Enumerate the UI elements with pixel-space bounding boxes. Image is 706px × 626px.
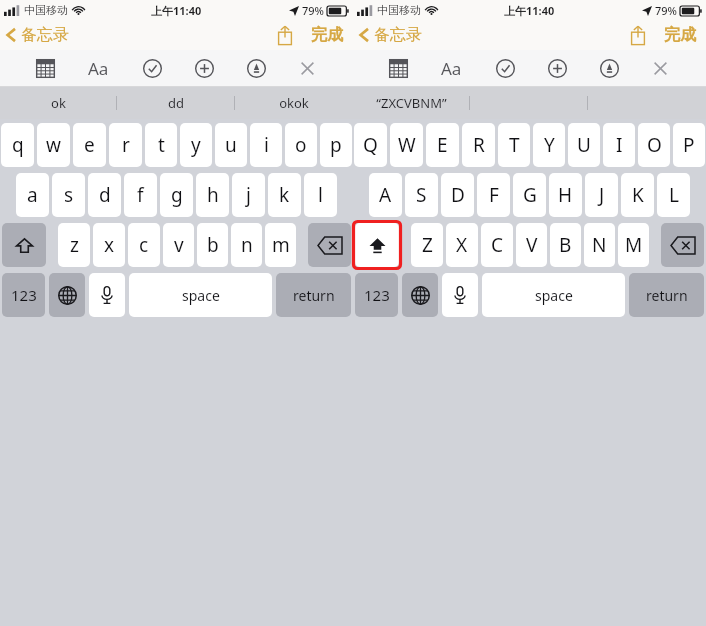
button[interactable]: C: [481, 223, 513, 267]
staticText: 上午11:40: [504, 3, 555, 18]
button[interactable]: ok: [0, 87, 117, 119]
button[interactable]: dd: [117, 87, 235, 119]
button[interactable]: return: [629, 273, 704, 317]
staticText: F: [489, 182, 499, 208]
button[interactable]: b: [197, 223, 228, 267]
button[interactable]: Z: [411, 223, 443, 267]
button[interactable]: “ZXCVBNM”: [353, 87, 470, 119]
button[interactable]: Add: [188, 54, 221, 83]
button[interactable]: j: [232, 173, 265, 217]
button[interactable]: U: [568, 123, 600, 167]
button[interactable]: G: [513, 173, 546, 217]
button[interactable]: Table: [29, 54, 62, 83]
staticText: 上午11:40: [151, 3, 202, 18]
button[interactable]: y: [180, 123, 212, 167]
button[interactable]: Shift: [355, 223, 399, 267]
button[interactable]: p: [320, 123, 352, 167]
button[interactable]: f: [124, 173, 157, 217]
button[interactable]: 123: [2, 273, 45, 317]
button[interactable]: Close: [291, 54, 324, 83]
button[interactable]: T: [498, 123, 530, 167]
button[interactable]: space: [482, 273, 625, 317]
button[interactable]: S: [405, 173, 438, 217]
staticText: z: [70, 232, 79, 258]
button[interactable]: z: [58, 223, 90, 267]
button[interactable]: Close: [644, 54, 677, 83]
button[interactable]: k: [268, 173, 301, 217]
button[interactable]: A: [369, 173, 402, 217]
button[interactable]: Checklist: [489, 54, 522, 83]
button[interactable]: i: [250, 123, 282, 167]
button[interactable]: Delete: [308, 223, 351, 267]
button[interactable]: v: [163, 223, 194, 267]
button[interactable]: Y: [533, 123, 565, 167]
button[interactable]: n: [231, 223, 262, 267]
staticText: p: [330, 132, 342, 158]
button[interactable]: I: [603, 123, 635, 167]
button[interactable]: N: [584, 223, 615, 267]
button[interactable]: d: [88, 173, 121, 217]
button[interactable]: J: [585, 173, 618, 217]
button[interactable]: Share: [271, 23, 299, 47]
button[interactable]: l: [304, 173, 337, 217]
button[interactable]: F: [477, 173, 510, 217]
button[interactable]: return: [276, 273, 351, 317]
button[interactable]: h: [196, 173, 229, 217]
button[interactable]: Add: [541, 54, 574, 83]
button[interactable]: a: [16, 173, 49, 217]
button[interactable]: Shift: [2, 223, 46, 267]
staticText: O: [647, 132, 662, 158]
button[interactable]: B: [550, 223, 581, 267]
button[interactable]: Switch keyboard: [49, 273, 85, 317]
button[interactable]: W: [390, 123, 423, 167]
button[interactable]: u: [215, 123, 247, 167]
button[interactable]: P: [673, 123, 705, 167]
button[interactable]: X: [446, 223, 478, 267]
button[interactable]: L: [657, 173, 690, 217]
staticText: C: [491, 232, 504, 258]
button[interactable]: Q: [354, 123, 387, 167]
button[interactable]: space: [129, 273, 272, 317]
button[interactable]: D: [441, 173, 474, 217]
staticText: D: [451, 182, 465, 208]
button[interactable]: Checklist: [136, 54, 169, 83]
button[interactable]: Delete: [661, 223, 704, 267]
button[interactable]: 备忘录: [353, 23, 430, 47]
button[interactable]: c: [128, 223, 160, 267]
button[interactable]: s: [52, 173, 85, 217]
button[interactable]: O: [638, 123, 670, 167]
button[interactable]: Aa: [80, 53, 117, 84]
button[interactable]: 完成: [309, 25, 353, 45]
button[interactable]: 123: [355, 273, 398, 317]
button[interactable]: 完成: [662, 25, 706, 45]
staticText: f: [137, 182, 144, 208]
button[interactable]: V: [516, 223, 547, 267]
button[interactable]: E: [426, 123, 459, 167]
button[interactable]: t: [145, 123, 177, 167]
button[interactable]: Share: [624, 23, 652, 47]
button[interactable]: okok: [235, 87, 353, 119]
button[interactable]: Markup: [240, 54, 273, 83]
button[interactable]: o: [285, 123, 317, 167]
button[interactable]: K: [621, 173, 654, 217]
button[interactable]: Markup: [593, 54, 626, 83]
button[interactable]: Aa: [433, 53, 470, 84]
button[interactable]: 备忘录: [0, 23, 77, 47]
button[interactable]: R: [462, 123, 495, 167]
button[interactable]: w: [37, 123, 70, 167]
button[interactable]: m: [265, 223, 296, 267]
button[interactable]: x: [93, 223, 125, 267]
button[interactable]: Switch keyboard: [402, 273, 438, 317]
button[interactable]: Dictation: [89, 273, 125, 317]
button[interactable]: Table: [382, 54, 415, 83]
button[interactable]: g: [160, 173, 193, 217]
button[interactable]: r: [109, 123, 142, 167]
button[interactable]: e: [73, 123, 106, 167]
button[interactable]: M: [618, 223, 649, 267]
button[interactable]: Dictation: [442, 273, 478, 317]
button[interactable]: H: [549, 173, 582, 217]
staticText: y: [191, 132, 201, 158]
button[interactable]: q: [1, 123, 34, 167]
